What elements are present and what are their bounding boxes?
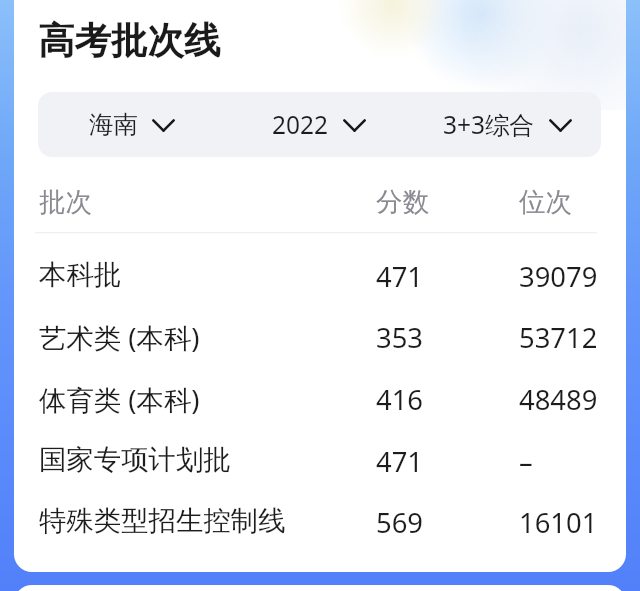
staticText: 艺术类 (本科) [39,319,200,356]
button[interactable]: 海南 [38,92,225,157]
staticText: 16101 [519,504,598,541]
other: 展开 3+3综合 选项 [549,118,572,132]
staticText: 3+3综合 [443,108,535,141]
button[interactable]: 国家专项计划批 [35,430,597,491]
button[interactable]: 2022 [225,92,413,157]
staticText: 2022 [272,108,329,141]
staticText: 416 [376,381,424,418]
button[interactable]: 体育类 (本科) [35,368,597,429]
staticText: 国家专项计划批 [39,443,231,478]
button[interactable]: 艺术类 (本科) [35,306,597,367]
staticText: 批次 [39,185,92,218]
staticText: 353 [376,319,424,356]
staticText: 48489 [519,381,598,418]
staticText: 471 [376,443,424,480]
button[interactable]: 特殊类型招生控制线 [35,491,597,552]
staticText: 39079 [519,258,598,295]
staticText: 471 [376,258,424,295]
staticText: 位次 [519,185,572,218]
button[interactable]: 3+3综合 [413,92,601,157]
staticText: 高考批次线 [38,18,221,64]
staticText: 特殊类型招生控制线 [39,504,286,539]
staticText: – [519,443,533,480]
staticText: 海南 [89,109,138,140]
other: 展开 2022 选项 [343,118,366,132]
staticText: 53712 [519,319,598,356]
staticText: 569 [376,504,424,541]
button[interactable]: 本科批 [35,245,597,306]
staticText: 体育类 (本科) [39,381,200,418]
other: 展开 海南 选项 [152,118,175,132]
staticText: 分数 [376,185,429,218]
staticText: 本科批 [39,258,122,293]
